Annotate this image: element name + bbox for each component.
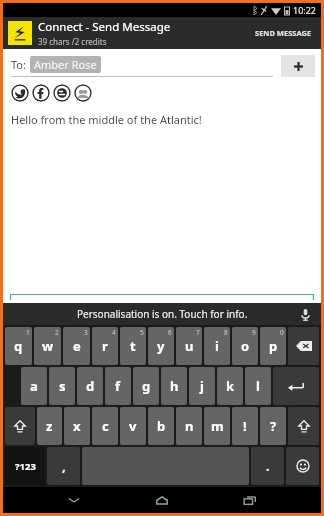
- button[interactable]: Recents: [233, 488, 267, 512]
- button[interactable]: g: [133, 367, 159, 405]
- staticText: a: [30, 377, 38, 395]
- button[interactable]: Add recipient: [281, 55, 315, 77]
- button[interactable]: p: [260, 327, 286, 365]
- button[interactable]: Enter: [273, 367, 319, 405]
- staticText: SEND MESSAGE: [255, 28, 312, 38]
- button[interactable]: k: [217, 367, 243, 405]
- button[interactable]: Twitter: [11, 84, 29, 102]
- button[interactable]: Emoji: [286, 447, 319, 485]
- button[interactable]: Comma: [47, 447, 80, 485]
- staticText: ,: [62, 457, 66, 475]
- staticText: Hello from the middle of the Atlantic!: [11, 112, 202, 127]
- button[interactable]: m: [204, 407, 230, 445]
- staticText: 39 chars /2 credits: [38, 36, 107, 47]
- staticText: Connect - Send Message: [38, 19, 171, 35]
- button[interactable]: b: [148, 407, 174, 445]
- button[interactable]: Shift: [5, 407, 35, 445]
- staticText: y: [157, 337, 165, 355]
- button[interactable]: x: [64, 407, 90, 445]
- staticText: e: [73, 337, 81, 355]
- button[interactable]: r: [92, 327, 118, 365]
- staticText: 0: [280, 328, 284, 337]
- button[interactable]: d: [77, 367, 103, 405]
- button[interactable]: z: [37, 407, 62, 445]
- button[interactable]: c: [92, 407, 118, 445]
- button[interactable]: n: [176, 407, 202, 445]
- staticText: o: [241, 337, 250, 355]
- button[interactable]: e: [63, 327, 90, 365]
- button[interactable]: q: [5, 327, 32, 365]
- staticText: j: [200, 377, 204, 395]
- button[interactable]: ?: [260, 407, 286, 445]
- button[interactable]: Facebook: [32, 84, 50, 102]
- button[interactable]: Blogger: [53, 84, 71, 102]
- staticText: ?123: [15, 460, 36, 473]
- staticText: 2: [55, 328, 59, 337]
- button[interactable]: Backspace: [288, 327, 319, 365]
- button[interactable]: !: [232, 407, 258, 445]
- staticText: Amber Rose: [34, 57, 97, 72]
- staticText: g: [142, 377, 151, 395]
- button[interactable]: l: [245, 367, 271, 405]
- staticText: u: [185, 337, 194, 355]
- button[interactable]: a: [21, 367, 47, 405]
- staticText: Personalisation is on. Touch for info.: [77, 307, 248, 321]
- button[interactable]: h: [161, 367, 187, 405]
- button[interactable]: Voice input: [297, 306, 313, 322]
- staticText: 10:22: [293, 4, 317, 16]
- staticText: n: [185, 417, 194, 435]
- button[interactable]: w: [34, 327, 61, 365]
- staticText: 5: [140, 328, 144, 337]
- button[interactable]: SEND MESSAGE: [251, 22, 316, 44]
- button[interactable]: i: [204, 327, 230, 365]
- staticText: To:: [11, 57, 26, 72]
- staticText: f: [115, 377, 121, 395]
- button[interactable]: More: [74, 84, 92, 102]
- staticText: x: [73, 417, 81, 435]
- button[interactable]: Home: [145, 488, 179, 512]
- staticText: 4: [112, 328, 116, 337]
- button[interactable]: f: [105, 367, 131, 405]
- button[interactable]: Shift: [288, 407, 319, 445]
- button[interactable]: Period: [251, 447, 284, 485]
- staticText: m: [211, 417, 224, 435]
- staticText: k: [226, 377, 235, 395]
- staticText: p: [269, 337, 278, 355]
- staticText: 3: [84, 328, 88, 337]
- staticText: 6: [168, 328, 172, 337]
- staticText: 8: [224, 328, 228, 337]
- button[interactable]: v: [120, 407, 146, 445]
- staticText: b: [157, 417, 166, 435]
- staticText: 1: [26, 328, 30, 337]
- button[interactable]: Amber Rose: [30, 56, 101, 73]
- staticText: ?: [270, 417, 277, 435]
- staticText: 9: [252, 328, 256, 337]
- staticText: d: [86, 377, 95, 395]
- staticText: 7: [196, 328, 200, 337]
- button[interactable]: Back: [57, 488, 91, 512]
- staticText: l: [256, 377, 260, 395]
- staticText: z: [46, 417, 53, 435]
- staticText: i: [215, 337, 219, 355]
- button[interactable]: s: [49, 367, 75, 405]
- staticText: !: [243, 417, 247, 435]
- staticText: v: [129, 417, 137, 435]
- button[interactable]: Personalisation is on. Touch for info.: [77, 307, 248, 321]
- staticText: t: [130, 337, 136, 355]
- button[interactable]: o: [232, 327, 258, 365]
- button[interactable]: u: [176, 327, 202, 365]
- button[interactable]: j: [189, 367, 215, 405]
- staticText: q: [14, 337, 23, 355]
- staticText: c: [102, 417, 109, 435]
- staticText: r: [102, 337, 108, 355]
- staticText: .: [266, 457, 270, 475]
- staticText: h: [170, 377, 179, 395]
- button[interactable]: t: [120, 327, 146, 365]
- button[interactable]: ?123: [5, 447, 45, 485]
- staticText: s: [59, 377, 66, 395]
- staticText: w: [42, 337, 54, 355]
- button[interactable]: y: [148, 327, 174, 365]
